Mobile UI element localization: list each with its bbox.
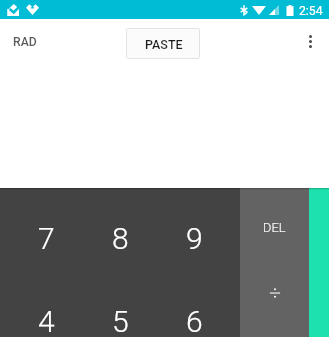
staticText: PASTE xyxy=(145,37,183,52)
button[interactable]: 6 xyxy=(157,280,231,337)
staticText: 7 xyxy=(38,221,55,256)
button[interactable]: 5 xyxy=(83,280,157,337)
staticText: 4 xyxy=(38,304,55,337)
button[interactable]: DEL xyxy=(240,194,309,260)
staticText: 5 xyxy=(112,304,129,337)
button[interactable]: 8 xyxy=(83,197,157,280)
staticText: 2:54 xyxy=(299,4,323,18)
staticText: RAD xyxy=(13,35,37,49)
button[interactable]: PASTE xyxy=(126,28,200,59)
staticText: 8 xyxy=(112,221,129,256)
staticText: DEL xyxy=(263,220,286,235)
button[interactable]: Divide xyxy=(240,260,309,326)
button[interactable]: 7 xyxy=(9,197,83,280)
button[interactable]: 9 xyxy=(157,197,231,280)
staticText: 9 xyxy=(186,221,203,256)
button[interactable]: More options xyxy=(292,23,328,59)
button[interactable]: 4 xyxy=(9,280,83,337)
staticText: 6 xyxy=(186,304,203,337)
